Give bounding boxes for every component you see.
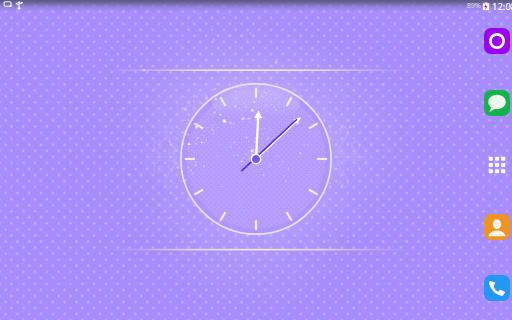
- button[interactable]: Camera: [484, 28, 510, 54]
- staticText: 89%: [467, 1, 481, 11]
- button[interactable]: Contacts: [484, 214, 510, 240]
- button[interactable]: Phone: [484, 275, 510, 301]
- button[interactable]: Apps: [484, 152, 510, 178]
- staticText: 12:08: [492, 0, 512, 12]
- button[interactable]: Messages: [484, 90, 510, 116]
